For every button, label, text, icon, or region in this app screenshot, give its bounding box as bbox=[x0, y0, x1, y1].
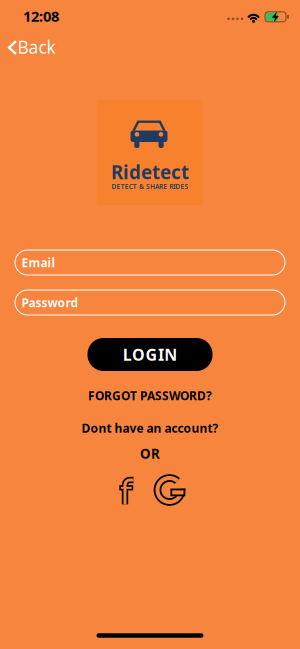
button[interactable]: Email bbox=[14, 249, 285, 275]
button[interactable]: Password bbox=[14, 289, 285, 315]
staticText: DETECT & SHARE RIDES bbox=[111, 182, 188, 191]
button[interactable]: Back bbox=[8, 40, 60, 56]
button[interactable]: Sign in with Google bbox=[152, 473, 186, 507]
button[interactable]: Sign in with Facebook bbox=[117, 477, 135, 507]
staticText: Dont have an account? bbox=[81, 420, 218, 436]
staticText: Email bbox=[21, 254, 55, 270]
staticText: Ridetect bbox=[111, 160, 189, 184]
staticText: 12:08 bbox=[23, 6, 59, 26]
staticText: Password bbox=[21, 294, 78, 310]
staticText: FORGOT PASSWORD? bbox=[88, 387, 212, 403]
button[interactable]: FORGOT PASSWORD? bbox=[88, 387, 212, 403]
staticText: OR bbox=[140, 445, 160, 462]
staticText: LOGIN bbox=[123, 344, 177, 365]
button[interactable]: LOGIN bbox=[87, 338, 212, 371]
button[interactable]: Dont have an account? bbox=[81, 420, 218, 436]
staticText: Back bbox=[17, 35, 55, 58]
